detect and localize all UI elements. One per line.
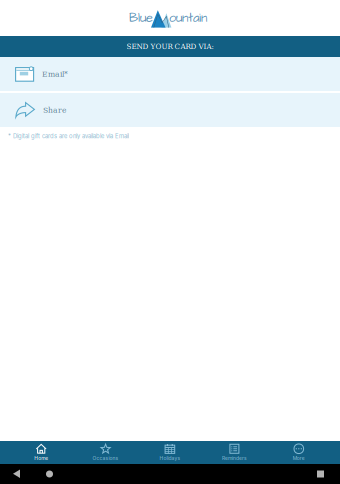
- staticText: * Digital gift cards are only available …: [8, 132, 129, 140]
- button[interactable]: Email*: [0, 57, 340, 91]
- button[interactable]: Recent apps: [317, 470, 340, 477]
- staticText: Email*: [42, 70, 68, 78]
- staticText: Home: [34, 455, 48, 461]
- button[interactable]: Share: [0, 93, 340, 127]
- button[interactable]: Holidays: [138, 441, 202, 464]
- staticText: Share: [43, 106, 66, 114]
- staticText: ountain: [169, 9, 207, 27]
- staticText: Holidays: [159, 455, 180, 461]
- staticText: More: [293, 455, 305, 461]
- staticText: Reminders: [222, 455, 247, 461]
- button[interactable]: Back: [0, 469, 21, 478]
- button[interactable]: Reminders: [202, 441, 267, 464]
- button[interactable]: Occasions: [73, 441, 138, 464]
- staticText: Occasions: [93, 455, 119, 461]
- button[interactable]: More: [267, 441, 331, 464]
- button[interactable]: Home: [9, 441, 73, 464]
- button[interactable]: Home: [21, 470, 53, 477]
- staticText: Blue: [129, 9, 153, 27]
- staticText: SEND YOUR CARD VIA:: [126, 42, 213, 51]
